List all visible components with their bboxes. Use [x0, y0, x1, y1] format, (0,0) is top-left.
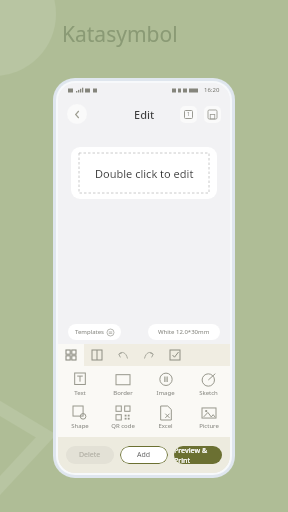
- staticText: Double click to edit: [95, 166, 194, 181]
- button[interactable]: Text: [58, 371, 101, 399]
- staticText: Edit: [134, 107, 155, 122]
- button[interactable]: Delete: [66, 446, 114, 464]
- button[interactable]: White 12.0*30mm: [148, 324, 220, 340]
- staticText: Text: [74, 389, 86, 397]
- staticText: Sketch: [199, 389, 218, 397]
- staticText: Shape: [71, 422, 89, 430]
- staticText: QR code: [111, 422, 135, 430]
- button[interactable]: Back: [67, 104, 87, 124]
- staticText: 1: [187, 111, 190, 118]
- staticText: Preview & Print: [174, 446, 222, 464]
- button[interactable]: Templates: [68, 324, 121, 340]
- staticText: Image: [156, 389, 175, 397]
- staticText: Picture: [199, 422, 219, 430]
- staticText: Add: [137, 450, 151, 460]
- button[interactable]: Picture: [187, 404, 230, 432]
- staticText: Templates: [75, 328, 104, 336]
- button[interactable]: Copies: [180, 106, 197, 123]
- staticText: Delete: [79, 450, 101, 460]
- staticText: 16:20: [204, 86, 220, 94]
- staticText: Katasymbol: [62, 20, 178, 49]
- button[interactable]: Preview & Print: [174, 446, 222, 464]
- button[interactable]: Add: [120, 446, 168, 464]
- button[interactable]: Double click to edit: [71, 147, 217, 199]
- button[interactable]: Layout: [84, 344, 110, 366]
- staticText: Border: [113, 389, 133, 397]
- staticText: Excel: [158, 422, 173, 430]
- button[interactable]: Undo: [110, 344, 136, 366]
- button[interactable]: Border: [101, 371, 144, 399]
- staticText: White 12.0*30mm: [158, 328, 210, 336]
- button[interactable]: Save: [204, 106, 221, 123]
- button[interactable]: Redo: [136, 344, 162, 366]
- button[interactable]: Shape: [58, 404, 101, 432]
- button[interactable]: Image: [144, 371, 187, 399]
- button[interactable]: QR code: [101, 404, 144, 432]
- button[interactable]: Excel: [144, 404, 187, 432]
- button[interactable]: Elements: [58, 344, 84, 366]
- button[interactable]: Select: [162, 344, 188, 366]
- button[interactable]: Sketch: [187, 371, 230, 399]
